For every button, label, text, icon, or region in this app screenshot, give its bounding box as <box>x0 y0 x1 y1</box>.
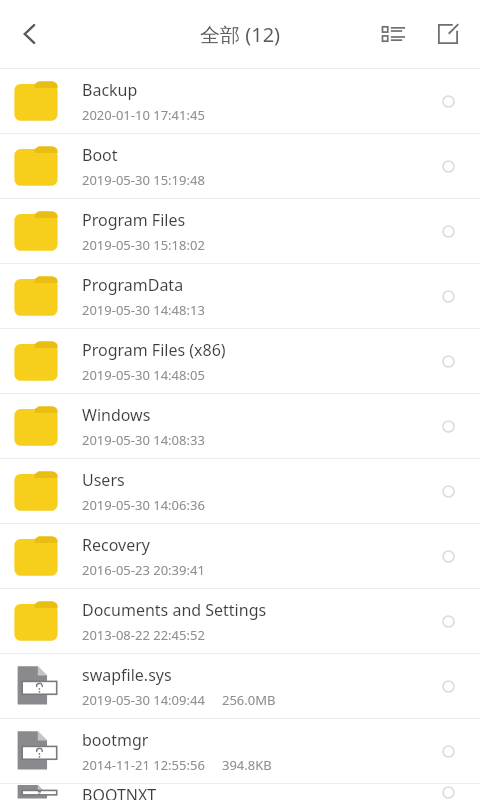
button[interactable]: Select Backup <box>428 81 468 121</box>
button[interactable]: Select Recovery <box>428 536 468 576</box>
staticText: Backup <box>82 79 138 101</box>
staticText: 394.8KB <box>222 756 272 774</box>
staticText: 全部 (12) <box>200 21 281 48</box>
staticText: Users <box>82 469 125 491</box>
button[interactable]: Program Files (x86) <box>0 329 480 393</box>
staticText: ProgramData <box>82 274 184 296</box>
button[interactable]: Select BOOTNXT <box>428 784 468 800</box>
button[interactable]: bootmgr <box>0 719 480 783</box>
staticText: Recovery <box>82 534 150 556</box>
button[interactable]: Select bootmgr <box>428 731 468 771</box>
staticText: Documents and Settings <box>82 599 267 621</box>
button[interactable]: Select Program Files <box>428 211 468 251</box>
button[interactable]: Select Documents and Settings <box>428 601 468 641</box>
button[interactable]: Boot <box>0 134 480 198</box>
button[interactable]: Select Users <box>428 471 468 511</box>
button[interactable]: Recovery <box>0 524 480 588</box>
button[interactable]: Select Program Files (x86) <box>428 341 468 381</box>
staticText: 2014-11-21 12:55:56 <box>82 756 205 774</box>
button[interactable]: Select ProgramData <box>428 276 468 316</box>
staticText: Program Files (x86) <box>82 339 226 361</box>
staticText: Boot <box>82 144 118 166</box>
button[interactable]: Users <box>0 459 480 523</box>
button[interactable]: Edit <box>424 10 472 58</box>
staticText: 256.0MB <box>222 691 276 709</box>
button[interactable]: Select swapfile.sys <box>428 666 468 706</box>
staticText: 2013-08-22 22:45:52 <box>82 626 205 644</box>
staticText: swapfile.sys <box>82 664 172 686</box>
button[interactable]: Select Boot <box>428 146 468 186</box>
button[interactable]: Program Files <box>0 199 480 263</box>
staticText: 2020-01-10 17:41:45 <box>82 106 205 124</box>
button[interactable]: View mode <box>370 10 418 58</box>
staticText: bootmgr <box>82 729 149 751</box>
staticText: 2019-05-30 15:18:02 <box>82 236 205 254</box>
button[interactable]: Documents and Settings <box>0 589 480 653</box>
button[interactable]: Windows <box>0 394 480 458</box>
button[interactable]: BOOTNXT <box>0 784 480 800</box>
staticText: BOOTNXT <box>82 784 157 800</box>
staticText: 2019-05-30 14:09:44 <box>82 691 205 709</box>
button[interactable]: Backup <box>0 69 480 133</box>
staticText: 2019-05-30 14:06:36 <box>82 496 205 514</box>
staticText: 2019-05-30 15:19:48 <box>82 171 205 189</box>
button[interactable]: ProgramData <box>0 264 480 328</box>
staticText: 2019-05-30 14:08:33 <box>82 431 205 449</box>
staticText: Program Files <box>82 209 186 231</box>
button[interactable]: swapfile.sys <box>0 654 480 718</box>
staticText: 2019-05-30 14:48:05 <box>82 366 205 384</box>
staticText: Windows <box>82 404 151 426</box>
button[interactable]: Back <box>4 8 56 60</box>
button[interactable]: Select Windows <box>428 406 468 446</box>
staticText: 2016-05-23 20:39:41 <box>82 561 205 579</box>
staticText: 2019-05-30 14:48:13 <box>82 301 205 319</box>
